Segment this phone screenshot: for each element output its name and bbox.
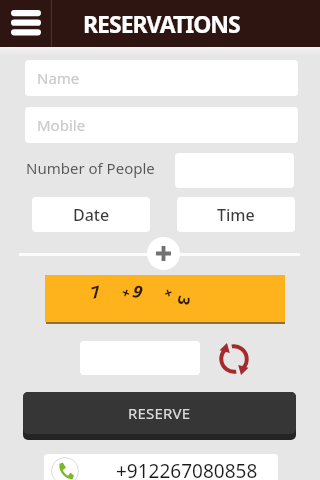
button[interactable]: Name: [25, 60, 298, 96]
button[interactable]: RESERVE: [23, 392, 296, 434]
staticText: Time: [217, 204, 255, 226]
staticText: RESERVATIONS: [83, 8, 240, 39]
button[interactable]: Date: [32, 197, 150, 232]
staticText: RESERVE: [128, 403, 191, 423]
button[interactable]: Add: [147, 237, 180, 270]
button[interactable]: +912267080858: [44, 454, 278, 480]
staticText: 3: [172, 294, 196, 308]
staticText: Mobile: [37, 115, 86, 135]
button[interactable]: Time: [177, 197, 295, 232]
staticText: 9: [131, 279, 145, 304]
button[interactable]: Mobile: [25, 107, 298, 143]
staticText: +: [161, 282, 176, 303]
button[interactable]: Refresh captcha: [217, 342, 251, 376]
staticText: 7: [88, 280, 103, 304]
staticText: +912267080858: [116, 458, 258, 480]
staticText: Name: [37, 68, 80, 88]
button[interactable]: Menu: [0, 0, 51, 47]
staticText: Date: [73, 204, 110, 226]
staticText: +: [119, 282, 134, 303]
staticText: Number of People: [26, 158, 155, 178]
